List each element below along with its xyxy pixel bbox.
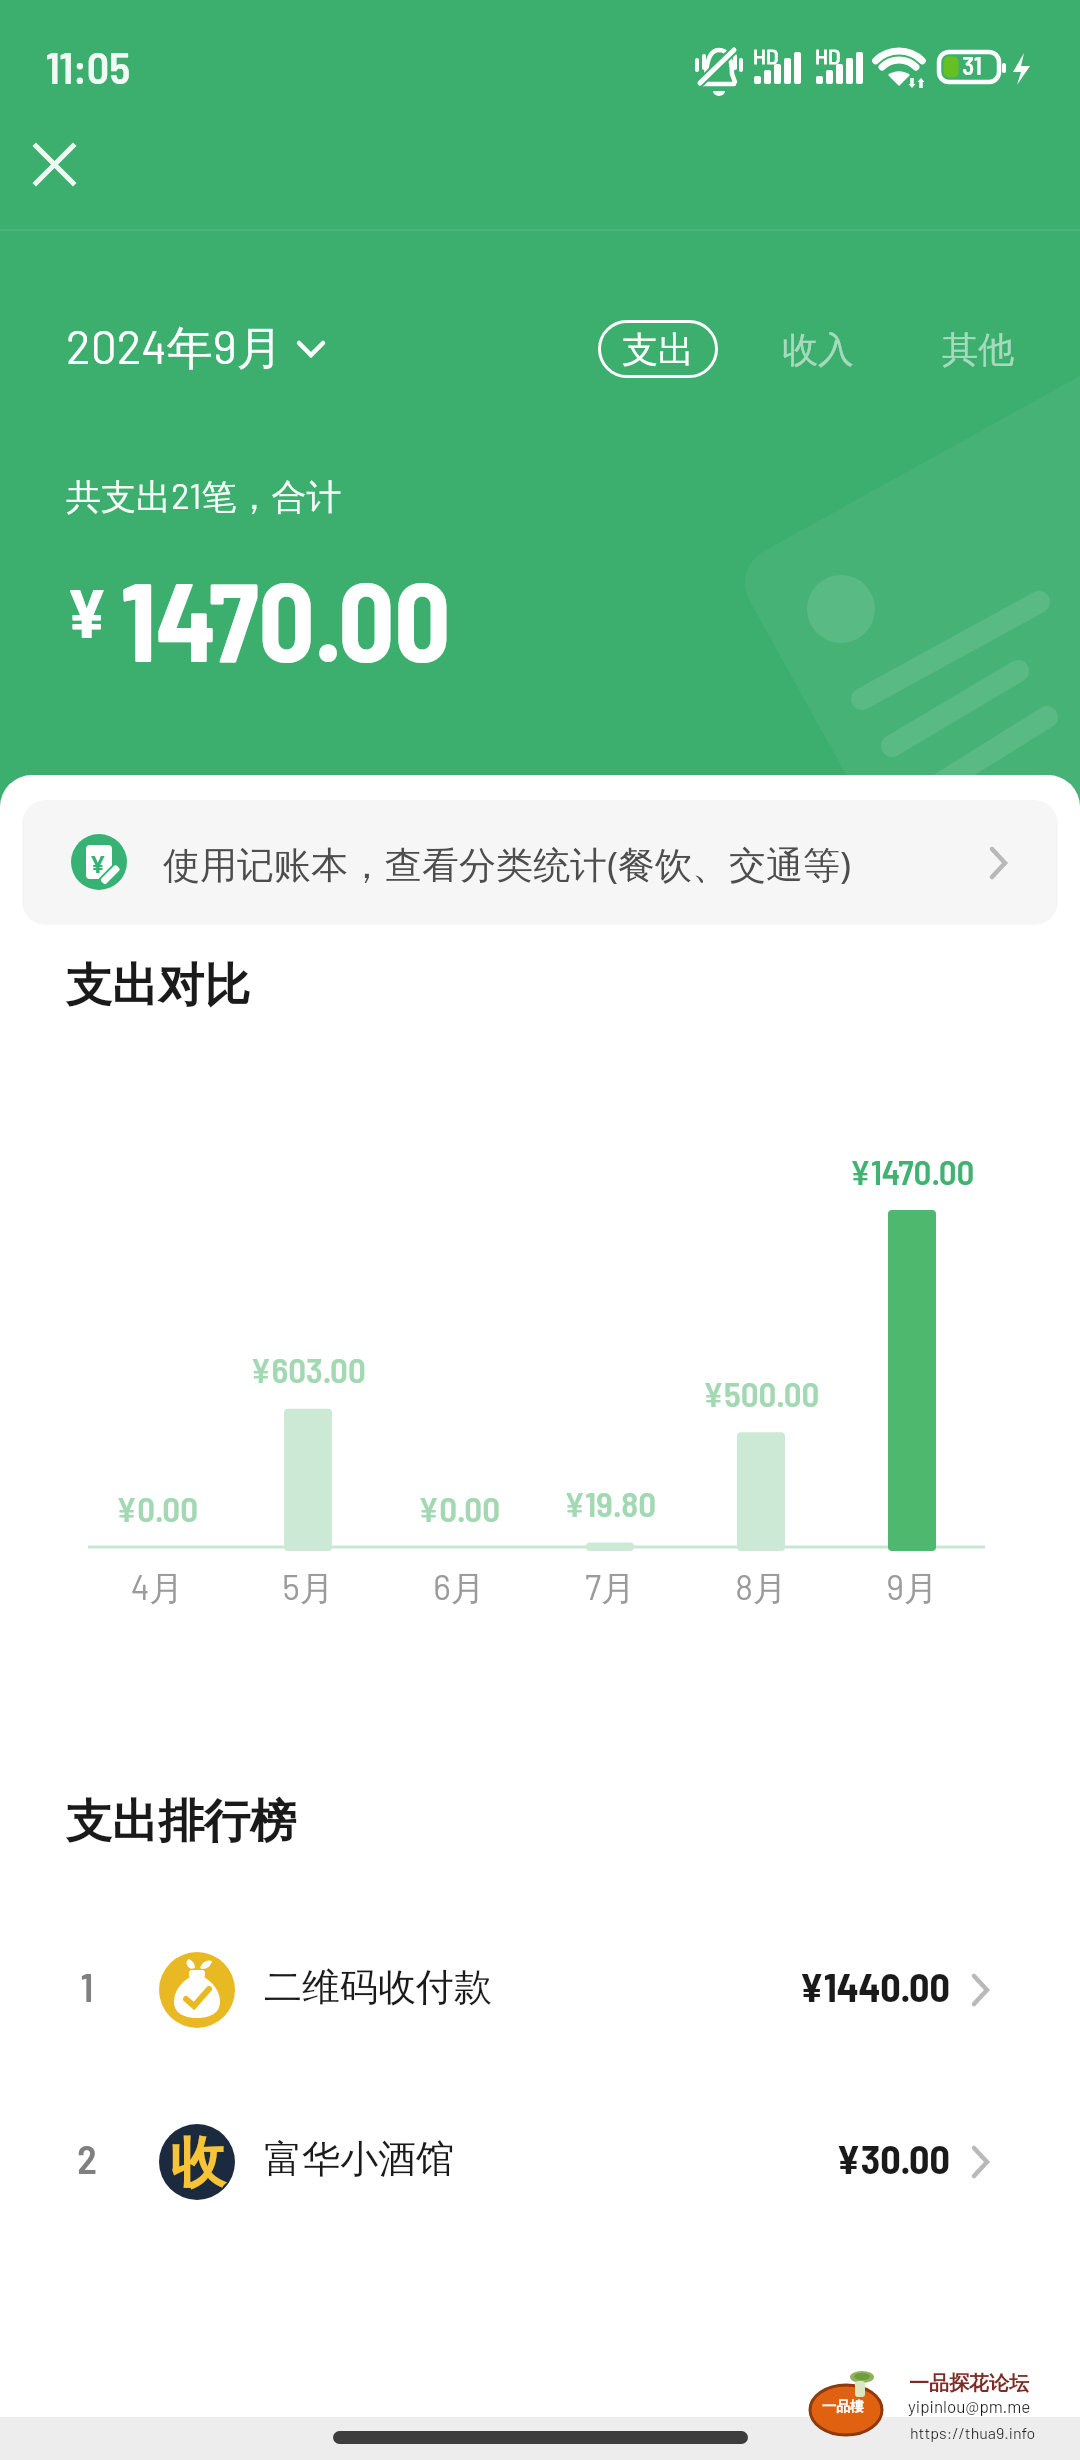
staticText: 共支出21笔，合计: [66, 474, 342, 519]
staticText: ¥0.00: [369, 1487, 549, 1529]
staticText: 二维码收付款: [264, 1963, 492, 2011]
staticText: 1: [57, 1962, 117, 2010]
staticText: 5月: [248, 1566, 368, 1610]
staticText: 支出排行榜: [66, 1793, 296, 1851]
button[interactable]: 2: [0, 2102, 1080, 2222]
button[interactable]: ¥: [22, 800, 1058, 925]
staticText: ¥500.00: [671, 1372, 851, 1414]
button[interactable]: 收入: [770, 320, 866, 378]
staticText: ¥30.00: [650, 2134, 950, 2182]
staticText: 一品探花论坛: [909, 2371, 1029, 2396]
staticText: ¥1440.00: [650, 1962, 950, 2010]
staticText: ¥0.00: [67, 1487, 247, 1529]
staticText: 收: [170, 2128, 225, 2197]
staticText: 9月: [852, 1566, 972, 1610]
staticText: 2024年9月: [66, 318, 283, 378]
button[interactable]: 其他: [930, 320, 1026, 378]
staticText: 2: [57, 2134, 117, 2182]
staticText: HD: [815, 44, 841, 68]
staticText: 富华小酒馆: [264, 2135, 454, 2183]
staticText: 7月: [550, 1566, 670, 1610]
staticText: 1470.00: [121, 552, 451, 684]
staticText: ¥: [91, 847, 105, 880]
button[interactable]: 1: [0, 1930, 1080, 2050]
staticText: yipinlou@pm.me: [908, 2396, 1031, 2416]
button[interactable]: 支出: [598, 320, 718, 378]
staticText: 4月: [97, 1566, 217, 1610]
staticText: 其他: [942, 327, 1014, 372]
staticText: 11:05: [46, 40, 131, 93]
staticText: ¥1470.00: [822, 1150, 1002, 1192]
staticText: ¥: [66, 570, 108, 652]
staticText: 8月: [701, 1566, 821, 1610]
staticText: 31: [948, 50, 996, 80]
staticText: 6月: [399, 1566, 519, 1610]
staticText: HD: [753, 44, 779, 68]
staticText: ¥603.00: [218, 1348, 398, 1390]
staticText: 使用记账本，查看分类统计(餐饮、交通等): [163, 838, 852, 889]
button[interactable]: [26, 136, 86, 196]
staticText: 支出: [622, 327, 694, 372]
button[interactable]: 2024年9月: [66, 318, 327, 378]
staticText: 支出对比: [66, 957, 250, 1015]
staticText: 一品樓: [822, 2398, 864, 2416]
staticText: ¥19.80: [520, 1482, 700, 1524]
staticText: 收入: [782, 327, 854, 372]
staticText: https://thua9.info: [910, 2423, 1036, 2442]
